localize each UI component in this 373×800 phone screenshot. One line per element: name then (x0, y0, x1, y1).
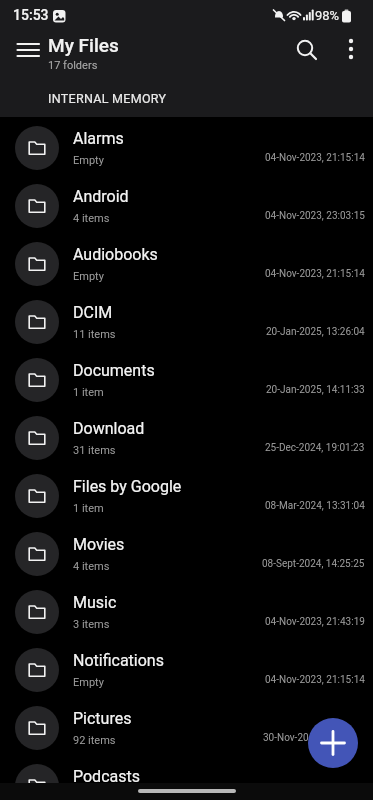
staticText: 30-Nov-20 (263, 732, 309, 744)
staticText: 04-Nov-2023, 21:15:14 (265, 152, 365, 164)
staticText: 04-Nov-2023, 21:15:14 (265, 674, 365, 686)
button[interactable] (308, 718, 358, 768)
staticText: Alarms (73, 129, 124, 148)
staticText: 20-Jan-2025, 13:26:04 (266, 326, 365, 338)
staticText: Empty (73, 270, 104, 283)
staticText: 17 folders (48, 59, 98, 72)
button[interactable]: Pictures (0, 699, 373, 757)
button[interactable]: Notifications (0, 641, 373, 699)
staticText: Pictures (73, 709, 132, 728)
button[interactable]: Documents (0, 351, 373, 409)
staticText: 04-Nov-2023, 21:15:14 (265, 268, 365, 280)
staticText: Audiobooks (73, 245, 158, 264)
button[interactable]: Alarms (0, 119, 373, 177)
button[interactable]: Android (0, 177, 373, 235)
staticText: 31 items (73, 444, 116, 457)
staticText: INTERNAL MEMORY (48, 91, 167, 106)
button[interactable] (286, 29, 326, 69)
staticText: DCIM (73, 303, 113, 322)
button[interactable]: Files by Google (0, 467, 373, 525)
staticText: 15:53 (13, 7, 49, 23)
staticText: 20-Jan-2025, 14:11:33 (266, 384, 365, 396)
button[interactable] (333, 30, 369, 66)
staticText: 04-Nov-2023, 21:43:19 (265, 616, 365, 628)
button[interactable]: Audiobooks (0, 235, 373, 293)
button[interactable]: Movies (0, 525, 373, 583)
staticText: 08-Sept-2024, 14:25:25 (262, 558, 365, 570)
staticText: Podcasts (73, 767, 140, 786)
staticText: 11 items (73, 328, 116, 341)
button[interactable]: Music (0, 583, 373, 641)
staticText: 04-Nov-2023, 23:03:15 (265, 210, 365, 222)
staticText: Android (73, 187, 129, 206)
staticText: 1 item (73, 386, 104, 399)
staticText: Empty (73, 676, 104, 689)
staticText: 92 items (73, 734, 116, 747)
staticText: Music (73, 593, 117, 612)
button[interactable]: DCIM (0, 293, 373, 351)
staticText: Files by Google (73, 477, 182, 496)
staticText: 25-Dec-2024, 19:01:23 (265, 442, 365, 454)
staticText: Documents (73, 361, 155, 380)
staticText: Movies (73, 535, 125, 554)
staticText: 3 items (73, 618, 110, 631)
staticText: 4 items (73, 212, 110, 225)
button[interactable]: Download (0, 409, 373, 467)
staticText: 98% (315, 8, 340, 23)
staticText: Empty (73, 154, 104, 167)
staticText: 1 item (73, 502, 104, 515)
staticText: Notifications (73, 651, 164, 670)
staticText: 08-Mar-2024, 13:31:04 (265, 500, 365, 512)
button[interactable] (8, 30, 48, 70)
button[interactable]: Podcasts (0, 757, 373, 800)
staticText: Download (73, 419, 145, 438)
staticText: 4 items (73, 560, 110, 573)
staticText: My Files (48, 34, 119, 56)
